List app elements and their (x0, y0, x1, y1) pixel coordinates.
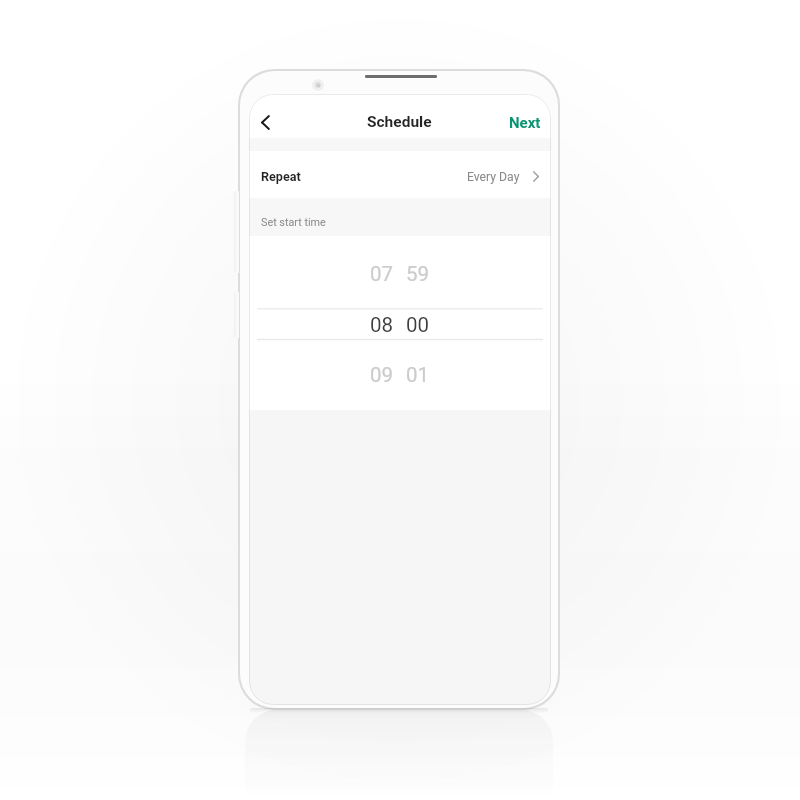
staticText: 01 (406, 363, 430, 387)
staticText: Set start time (261, 216, 326, 229)
staticText: 59 (406, 262, 430, 286)
button[interactable]: 07 (370, 262, 430, 286)
button[interactable]: Back (251, 107, 279, 137)
staticText: Schedule (367, 113, 432, 131)
button[interactable]: 08 (370, 313, 430, 337)
staticText: 00 (406, 313, 430, 337)
button[interactable]: Next (499, 106, 551, 140)
staticText: 09 (370, 363, 394, 387)
staticText: 08 (370, 313, 394, 337)
staticText: Next (509, 114, 541, 132)
staticText: 07 (370, 262, 394, 286)
button[interactable]: 09 (370, 363, 430, 387)
staticText: Every Day (467, 170, 520, 184)
staticText: Repeat (261, 169, 301, 184)
button[interactable]: Repeat (249, 151, 551, 198)
